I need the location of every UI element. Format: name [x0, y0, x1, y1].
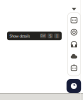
button[interactable]: Collapse sidebar — [69, 5, 79, 13]
staticText: Ctrl — [41, 34, 46, 38]
button[interactable]: Connectors — [68, 27, 79, 37]
staticText: I — [56, 33, 57, 38]
button[interactable]: Assistant — [67, 79, 81, 93]
staticText: Show details — [9, 33, 30, 38]
button[interactable]: Artifacts — [68, 15, 79, 25]
button[interactable]: Drive — [68, 51, 79, 61]
staticText: S — [49, 33, 51, 38]
button[interactable]: Apps — [68, 63, 79, 73]
button[interactable]: Voice — [68, 39, 79, 49]
